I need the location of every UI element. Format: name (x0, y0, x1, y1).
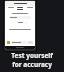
button[interactable]: Phone preview (3, 0, 37, 52)
staticText: Test yourself (11, 51, 53, 60)
button[interactable] (16, 7, 24, 10)
button[interactable] (26, 7, 34, 10)
button[interactable]: Accuracy score (7, 41, 10, 44)
button[interactable] (11, 41, 27, 44)
button[interactable] (12, 21, 28, 24)
button[interactable] (9, 16, 31, 19)
staticText: for accuracy (12, 60, 52, 69)
button[interactable] (7, 7, 15, 10)
